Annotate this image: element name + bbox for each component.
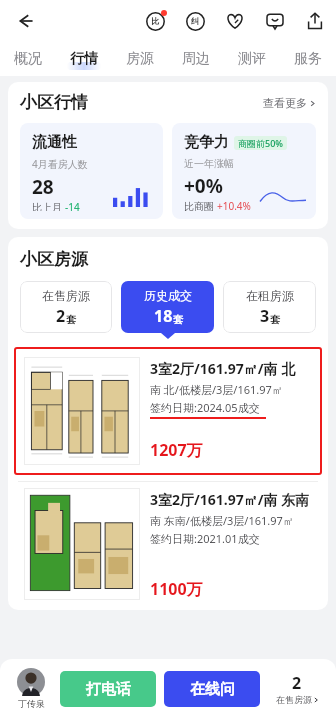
staticText: 3室2厅/161.97㎡/南 北 xyxy=(150,359,296,378)
button[interactable]: 2 xyxy=(268,672,326,705)
staticText: 历史成交 xyxy=(144,288,192,303)
staticText: 在售房源 xyxy=(276,694,312,705)
staticText: 套 xyxy=(173,313,183,326)
staticText: 房源 xyxy=(126,50,154,68)
button[interactable]: 流通性 xyxy=(20,123,163,219)
staticText: 2 xyxy=(292,672,302,694)
button[interactable]: 行情 xyxy=(56,50,112,68)
button[interactable]: Compare xyxy=(142,8,168,34)
staticText: 28 xyxy=(32,174,54,200)
staticText: 3室2厅/161.97㎡/南 东南 xyxy=(150,490,310,509)
staticText: 签约日期:2021.01成交 xyxy=(150,531,260,546)
staticText: 查看更多 xyxy=(263,96,307,110)
button[interactable]: 在售房源 xyxy=(20,281,112,333)
staticText: 在线问 xyxy=(190,680,235,699)
staticText: 纠 xyxy=(191,16,199,26)
button[interactable]: 竞争力 xyxy=(172,123,316,219)
button[interactable]: 概况 xyxy=(0,50,56,68)
staticText: 1100万 xyxy=(150,578,203,600)
button[interactable]: 丁传泉 xyxy=(10,668,52,709)
staticText: 1207万 xyxy=(150,439,203,461)
button[interactable]: Report xyxy=(182,8,208,34)
staticText: 竞争力 xyxy=(184,133,229,152)
button[interactable]: 查看更多 xyxy=(263,96,316,110)
button[interactable]: Chat xyxy=(262,8,288,34)
staticText: 小区行情 xyxy=(20,92,88,113)
button[interactable]: 周边 xyxy=(168,50,224,68)
staticText: 签约日期:2024.05成交 xyxy=(150,400,260,415)
staticText: 3 xyxy=(260,305,270,327)
staticText: 南 东南/低楼层/3层/161.97㎡ xyxy=(150,513,294,528)
staticText: 概况 xyxy=(14,50,42,68)
button[interactable]: Back xyxy=(10,6,40,36)
button[interactable]: 服务 xyxy=(280,50,336,68)
button[interactable]: 3室2厅/161.97㎡/南 北 xyxy=(18,351,318,471)
staticText: 小区房源 xyxy=(20,249,88,270)
staticText: +10.4% xyxy=(217,199,251,211)
staticText: 打电话 xyxy=(86,680,131,699)
staticText: 套 xyxy=(66,313,76,326)
staticText: 行情 xyxy=(70,50,98,68)
button[interactable]: Favorite xyxy=(222,8,248,34)
staticText: 比 xyxy=(151,16,159,26)
staticText: 近一年涨幅 xyxy=(184,157,234,170)
button[interactable]: 在线问 xyxy=(164,671,260,707)
staticText: 4月看房人数 xyxy=(32,157,88,171)
staticText: 套 xyxy=(270,313,280,326)
staticText: 商圈前50% xyxy=(238,137,283,149)
button[interactable]: 在租房源 xyxy=(223,281,316,333)
staticText: 比上月 xyxy=(32,200,65,211)
button[interactable]: 测评 xyxy=(224,50,280,68)
staticText: -14 xyxy=(65,200,80,211)
staticText: 服务 xyxy=(294,50,322,68)
staticText: 在售房源 xyxy=(42,288,90,303)
button[interactable]: 3室2厅/161.97㎡/南 东南 xyxy=(18,482,318,610)
staticText: 南 北/低楼层/3层/161.97㎡ xyxy=(150,382,283,397)
button[interactable]: 历史成交 xyxy=(121,281,214,333)
staticText: 丁传泉 xyxy=(18,698,45,709)
button[interactable]: 打电话 xyxy=(60,671,156,707)
staticText: 比商圈 xyxy=(184,199,217,211)
staticText: 测评 xyxy=(238,50,266,68)
staticText: +0% xyxy=(184,173,223,199)
staticText: 周边 xyxy=(182,50,210,68)
staticText: 2 xyxy=(56,305,66,327)
staticText: 在租房源 xyxy=(246,288,294,303)
staticText: 流通性 xyxy=(32,133,77,152)
staticText: 18 xyxy=(154,305,173,327)
button[interactable]: Share xyxy=(302,8,328,34)
button[interactable]: 房源 xyxy=(112,50,168,68)
